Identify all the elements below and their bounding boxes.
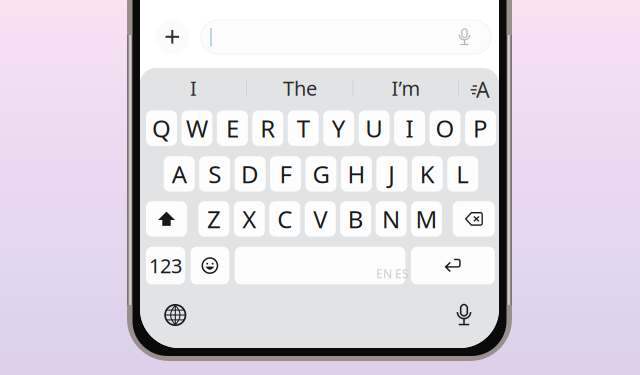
button[interactable]: Text formatting bbox=[461, 73, 497, 107]
button[interactable]: Q bbox=[146, 110, 177, 146]
button[interactable]: Add attachment bbox=[155, 20, 189, 54]
staticText: W bbox=[186, 112, 208, 144]
staticText: Q bbox=[152, 112, 171, 144]
button[interactable]: J bbox=[376, 156, 407, 192]
button[interactable]: Next keyboard bbox=[160, 300, 190, 330]
button[interactable]: Shift bbox=[146, 201, 187, 237]
button[interactable]: Emoji bbox=[191, 247, 229, 284]
staticText: E bbox=[226, 112, 239, 144]
staticText: M bbox=[415, 203, 437, 235]
staticText: T bbox=[297, 112, 310, 144]
button[interactable]: 123 bbox=[146, 247, 185, 284]
staticText: I bbox=[406, 112, 414, 144]
staticText: Z bbox=[207, 203, 221, 235]
button[interactable]: Message bbox=[201, 20, 491, 54]
button[interactable]: Dictation bbox=[449, 300, 479, 330]
staticText: H bbox=[347, 158, 365, 190]
button[interactable]: E bbox=[217, 110, 248, 146]
button[interactable]: X bbox=[234, 201, 265, 237]
button[interactable]: W bbox=[181, 110, 212, 146]
staticText: L bbox=[456, 158, 469, 190]
staticText: J bbox=[388, 158, 395, 190]
button[interactable]: Dictate message bbox=[451, 24, 477, 50]
button[interactable]: K bbox=[412, 156, 443, 192]
staticText: EN ES bbox=[376, 266, 409, 282]
staticText: P bbox=[473, 112, 488, 144]
staticText: I bbox=[190, 75, 197, 101]
button[interactable]: P bbox=[465, 110, 496, 146]
button[interactable]: Delete bbox=[453, 201, 495, 237]
staticText: C bbox=[277, 203, 292, 235]
staticText: The bbox=[283, 75, 317, 101]
staticText: A bbox=[476, 75, 490, 104]
button[interactable]: H bbox=[341, 156, 372, 192]
button[interactable]: Z bbox=[198, 201, 229, 237]
button[interactable]: F bbox=[270, 156, 301, 192]
button[interactable]: C bbox=[269, 201, 300, 237]
button[interactable]: G bbox=[305, 156, 336, 192]
button[interactable]: N bbox=[376, 201, 407, 237]
staticText: U bbox=[365, 112, 383, 144]
staticText: B bbox=[348, 203, 364, 235]
staticText: G bbox=[312, 158, 329, 190]
button[interactable]: The bbox=[250, 71, 350, 105]
button[interactable]: U bbox=[359, 110, 390, 146]
button[interactable]: O bbox=[429, 110, 460, 146]
button[interactable]: D bbox=[235, 156, 266, 192]
staticText: S bbox=[208, 158, 221, 190]
staticText: Y bbox=[332, 112, 346, 144]
button[interactable]: Y bbox=[323, 110, 354, 146]
button[interactable]: M bbox=[411, 201, 442, 237]
button[interactable]: B bbox=[340, 201, 371, 237]
staticText: O bbox=[435, 112, 454, 144]
button[interactable]: I bbox=[394, 110, 425, 146]
staticText: K bbox=[420, 158, 435, 190]
button[interactable]: L bbox=[447, 156, 478, 192]
staticText: V bbox=[313, 203, 327, 235]
button[interactable]: I bbox=[143, 71, 243, 105]
staticText: 123 bbox=[149, 252, 182, 279]
staticText: N bbox=[382, 203, 400, 235]
button[interactable]: Space bbox=[235, 247, 405, 284]
button[interactable]: Return bbox=[411, 247, 495, 284]
staticText: R bbox=[260, 112, 275, 144]
staticText: X bbox=[242, 203, 256, 235]
staticText: I’m bbox=[391, 75, 420, 101]
button[interactable]: S bbox=[199, 156, 230, 192]
button[interactable]: I’m bbox=[356, 71, 456, 105]
button[interactable]: R bbox=[252, 110, 283, 146]
button[interactable]: T bbox=[288, 110, 319, 146]
button[interactable]: A bbox=[164, 156, 195, 192]
staticText: A bbox=[172, 158, 187, 190]
staticText: D bbox=[241, 158, 259, 190]
button[interactable]: V bbox=[305, 201, 336, 237]
staticText: F bbox=[279, 158, 291, 190]
